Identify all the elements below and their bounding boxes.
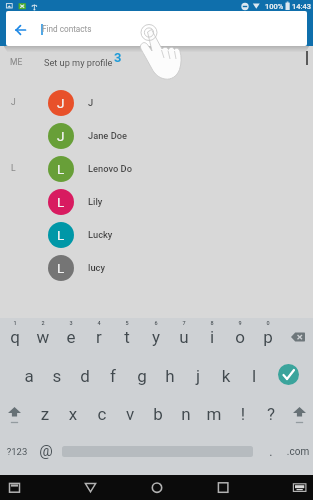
staticText: b [144, 404, 172, 424]
button[interactable]: Shift [285, 398, 313, 436]
button[interactable]: ! [229, 398, 257, 436]
staticText: 100% [265, 2, 284, 11]
staticText: c [88, 404, 116, 424]
button[interactable]: J [0, 86, 313, 119]
button[interactable]: 7 [170, 318, 198, 359]
staticText: 1 [1, 320, 29, 326]
staticText: ? [257, 404, 285, 424]
staticText: 3 [114, 50, 122, 65]
staticText: L [11, 163, 16, 173]
button[interactable]: x [59, 398, 87, 436]
staticText: p [254, 327, 282, 347]
staticText: y [142, 327, 170, 347]
staticText: L [57, 161, 65, 177]
button[interactable]: Back [77, 475, 105, 500]
button[interactable]: f [99, 359, 127, 398]
button[interactable]: Home [143, 475, 171, 500]
button[interactable]: a [15, 359, 43, 398]
staticText: ME [10, 57, 23, 67]
button[interactable]: k [212, 359, 240, 398]
staticText: k [212, 366, 240, 386]
button[interactable]: l [240, 359, 268, 398]
button[interactable]: .com [283, 436, 313, 472]
button[interactable]: v [116, 398, 144, 436]
staticText: L [57, 227, 65, 243]
staticText: 2 [29, 320, 57, 326]
staticText: .com [283, 446, 313, 458]
staticText: ! [229, 404, 257, 424]
button[interactable]: 9 [226, 318, 254, 359]
button[interactable]: . [258, 436, 284, 472]
staticText: ?123 [0, 446, 38, 457]
button[interactable]: 5 [113, 318, 141, 359]
button[interactable]: J [0, 119, 313, 152]
button[interactable]: Backspace [285, 318, 313, 359]
staticText: r [85, 327, 113, 347]
button[interactable]: 4 [85, 318, 113, 359]
button[interactable]: b [144, 398, 172, 436]
button[interactable]: L [0, 185, 313, 218]
staticText: f [99, 366, 127, 386]
button[interactable]: Find contacts [6, 11, 307, 46]
staticText: l [240, 366, 268, 386]
staticText: w [29, 327, 57, 347]
staticText: 9 [226, 320, 254, 326]
staticText: Lenovo Do [88, 163, 132, 174]
button[interactable]: s [43, 359, 71, 398]
button[interactable]: L [0, 251, 313, 284]
button[interactable]: 8 [198, 318, 226, 359]
staticText: L [57, 194, 65, 210]
staticText: m [200, 404, 228, 424]
button[interactable]: Keyboard [285, 475, 313, 500]
staticText: 6 [142, 320, 170, 326]
staticText: s [43, 366, 71, 386]
button[interactable]: Enter [275, 359, 303, 398]
staticText: 0 [254, 320, 282, 326]
staticText: @ [32, 442, 60, 460]
button[interactable]: d [71, 359, 99, 398]
staticText: 14:43 [292, 2, 312, 11]
button[interactable]: ? [257, 398, 285, 436]
staticText: 8 [198, 320, 226, 326]
button[interactable]: ME [0, 51, 313, 76]
button[interactable]: 1 [1, 318, 29, 359]
button[interactable]: c [88, 398, 116, 436]
staticText: 4 [85, 320, 113, 326]
staticText: v [116, 404, 144, 424]
button[interactable]: Shift [0, 398, 28, 436]
staticText: 5 [113, 320, 141, 326]
button[interactable]: 2 [29, 318, 57, 359]
button[interactable]: Screenshot [2, 475, 30, 500]
button[interactable]: @ [32, 436, 60, 472]
staticText: z [31, 404, 59, 424]
button[interactable]: Recents [209, 475, 237, 500]
staticText: Set up my profile [44, 57, 113, 68]
staticText: 7 [170, 320, 198, 326]
staticText: J [88, 97, 94, 108]
staticText: i [198, 327, 226, 347]
button[interactable]: L [0, 218, 313, 251]
staticText: L [57, 260, 65, 276]
button[interactable]: 0 [254, 318, 282, 359]
button[interactable]: 6 [142, 318, 170, 359]
staticText: t [113, 327, 141, 347]
button[interactable]: 3 [57, 318, 85, 359]
button[interactable]: ?123 [0, 436, 42, 472]
button[interactable]: j [184, 359, 212, 398]
staticText: Find contacts [42, 24, 92, 34]
button[interactable]: z [31, 398, 59, 436]
staticText: q [1, 327, 29, 347]
staticText: g [128, 366, 156, 386]
button[interactable]: L [0, 152, 313, 185]
staticText: Lily [88, 196, 103, 207]
staticText: e [57, 327, 85, 347]
button[interactable]: h [156, 359, 184, 398]
staticText: Jane Doe [88, 130, 128, 141]
staticText: . [258, 444, 284, 459]
staticText: n [172, 404, 200, 424]
staticText: J [11, 97, 16, 107]
button[interactable]: g [128, 359, 156, 398]
button[interactable]: m [200, 398, 228, 436]
button[interactable]: n [172, 398, 200, 436]
